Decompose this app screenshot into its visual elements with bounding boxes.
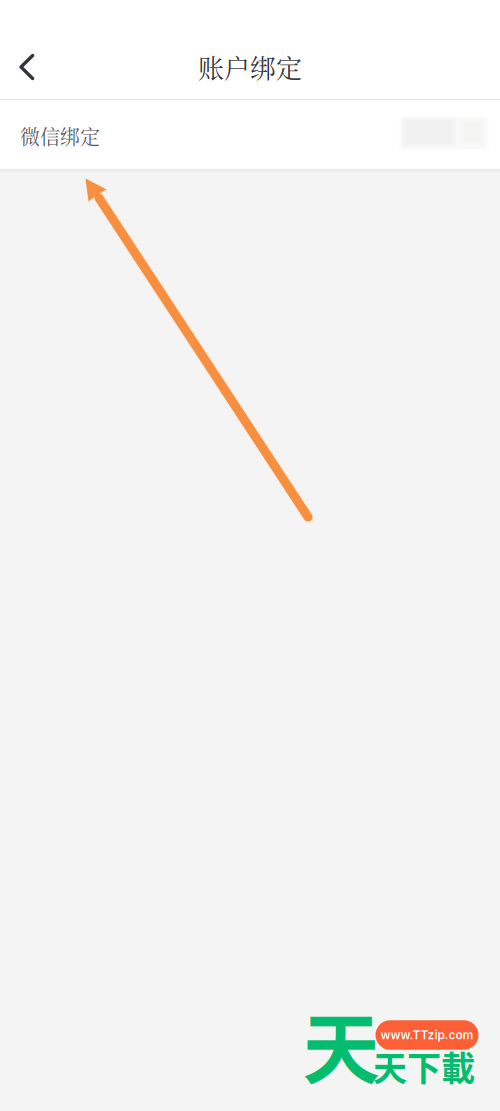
staticText: 天下載 [373,1041,475,1091]
staticText: www.TTzip.com [380,1028,473,1042]
button[interactable]: 微信绑定 [0,100,500,169]
staticText: 账户绑定 [198,48,302,86]
staticText: 天 [302,988,379,1100]
button[interactable]: Back [0,29,56,105]
staticText: 微信绑定 [20,122,100,150]
